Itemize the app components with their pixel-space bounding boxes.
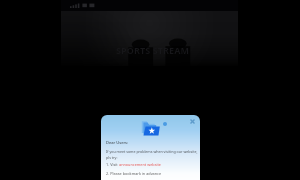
button[interactable]: Close dialog	[188, 117, 197, 126]
staticText: 1. Visit	[106, 162, 119, 167]
button[interactable]: 1. Visit	[106, 162, 161, 167]
staticText: announcement website	[119, 162, 161, 167]
staticText: SPORTS STREAM	[116, 44, 190, 56]
staticText: 2. Please bookmark in advance	[106, 171, 162, 176]
staticText: If you meet some problems when visiting …	[106, 149, 198, 154]
staticText: Dear Users:	[106, 140, 129, 145]
staticText: pls try:	[106, 155, 118, 160]
